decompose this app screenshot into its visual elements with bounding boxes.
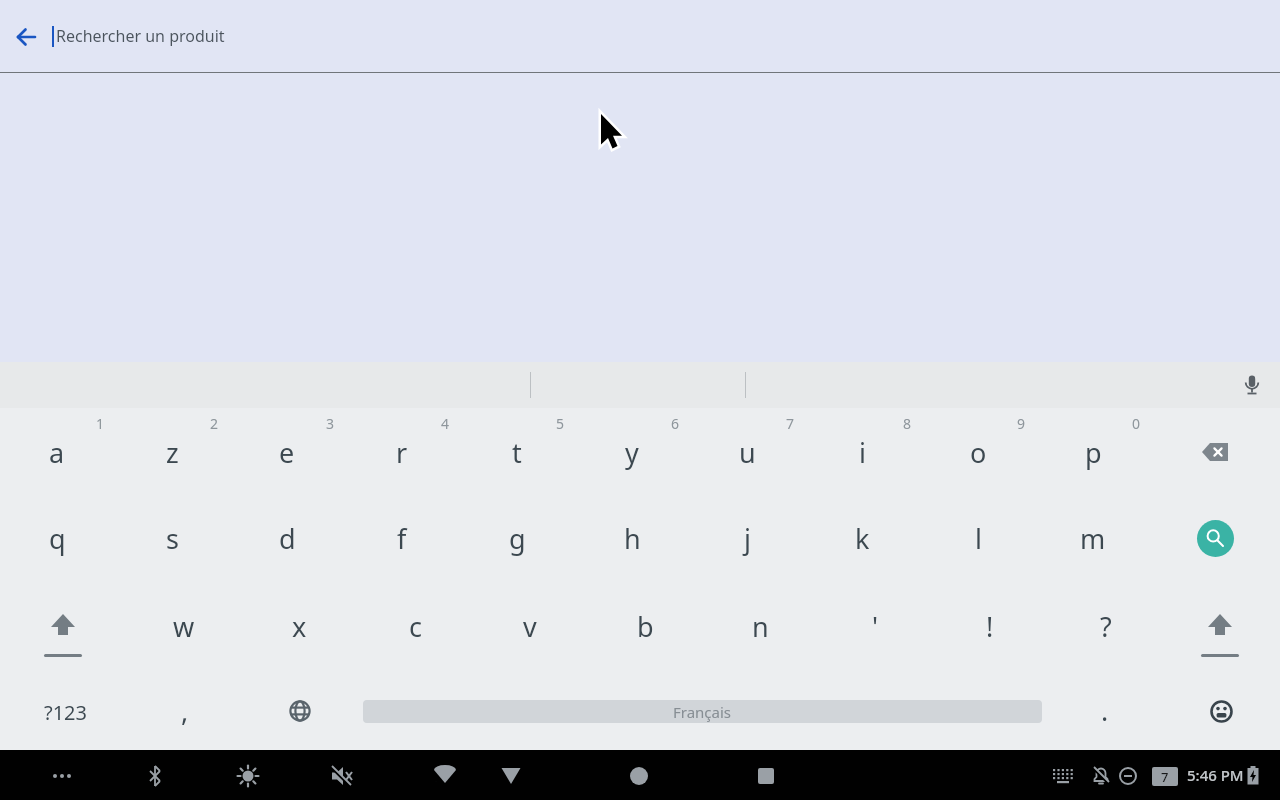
staticText: n <box>752 608 769 645</box>
button[interactable] <box>1168 593 1272 677</box>
staticText: h <box>624 520 641 557</box>
staticText: ?123 <box>44 699 87 726</box>
staticText: j <box>744 520 751 557</box>
button[interactable]: h <box>580 496 684 580</box>
button[interactable]: l <box>926 496 1030 580</box>
staticText: w <box>173 608 195 645</box>
staticText: 1 <box>96 414 105 433</box>
button[interactable]: b <box>593 584 697 668</box>
staticText: x <box>292 608 307 645</box>
button[interactable]: o <box>926 410 1030 494</box>
staticText: v <box>523 608 537 645</box>
button[interactable] <box>1236 369 1268 401</box>
staticText: q <box>49 520 66 557</box>
staticText: 0 <box>1132 414 1141 433</box>
staticText: z <box>166 434 179 471</box>
staticText: c <box>409 608 422 645</box>
staticText: 7 <box>1161 768 1169 786</box>
button[interactable]: z <box>120 410 224 494</box>
staticText: m <box>1080 520 1106 557</box>
button[interactable]: ? <box>1054 584 1158 668</box>
button[interactable] <box>248 672 352 750</box>
staticText: r <box>396 434 408 471</box>
staticText: b <box>637 608 654 645</box>
staticText: p <box>1085 434 1102 471</box>
button[interactable] <box>1163 410 1267 494</box>
staticText: 5 <box>556 414 565 433</box>
staticText: g <box>509 520 526 557</box>
button[interactable] <box>8 19 44 55</box>
button[interactable]: s <box>120 496 224 580</box>
staticText: 3 <box>326 414 335 433</box>
button[interactable] <box>1163 496 1267 580</box>
button[interactable]: ' <box>823 584 927 668</box>
button[interactable]: j <box>695 496 799 580</box>
staticText: k <box>855 520 870 557</box>
staticText: 5:46 PM <box>1187 765 1244 785</box>
button[interactable]: q <box>5 496 109 580</box>
staticText: ? <box>1100 608 1112 645</box>
button[interactable]: i <box>810 410 914 494</box>
button[interactable]: ?123 <box>10 672 120 752</box>
staticText: 6 <box>671 414 680 433</box>
button[interactable] <box>11 593 115 677</box>
button[interactable]: t <box>465 410 569 494</box>
staticText: e <box>279 434 295 471</box>
button[interactable]: u <box>695 410 799 494</box>
button[interactable]: v <box>478 584 582 668</box>
button[interactable]: c <box>363 584 467 668</box>
button[interactable]: m <box>1041 496 1145 580</box>
staticText: 9 <box>1017 414 1026 433</box>
button[interactable]: Français <box>363 700 1042 723</box>
button[interactable]: n <box>708 584 812 668</box>
button[interactable]: a <box>5 410 109 494</box>
staticText: f <box>397 520 407 557</box>
staticText: l <box>975 520 982 557</box>
staticText: Français <box>673 702 732 722</box>
button[interactable]: y <box>580 410 684 494</box>
staticText: ' <box>872 608 879 645</box>
staticText: . <box>1101 692 1109 729</box>
staticText: i <box>859 434 866 471</box>
staticText: u <box>739 434 756 471</box>
staticText: y <box>625 434 639 471</box>
staticText: 8 <box>903 414 912 433</box>
button[interactable]: g <box>465 496 569 580</box>
staticText: 2 <box>210 414 219 433</box>
staticText: 4 <box>441 414 450 433</box>
staticText: a <box>49 434 65 471</box>
staticText: 7 <box>786 414 795 433</box>
staticText: d <box>279 520 296 557</box>
staticText: ! <box>986 608 994 645</box>
button[interactable]: p <box>1041 410 1145 494</box>
button[interactable] <box>1169 672 1273 750</box>
staticText: o <box>970 434 987 471</box>
staticText: s <box>166 520 179 557</box>
button[interactable]: w <box>132 584 236 668</box>
button[interactable]: d <box>235 496 339 580</box>
button[interactable]: . <box>1053 670 1157 750</box>
button[interactable]: e <box>235 410 339 494</box>
button[interactable]: ! <box>938 584 1042 668</box>
staticText: t <box>512 434 522 471</box>
staticText: , <box>181 692 189 729</box>
button[interactable]: k <box>810 496 914 580</box>
staticText: Rechercher un produit <box>56 25 225 47</box>
button[interactable]: f <box>350 496 454 580</box>
button[interactable]: , <box>133 670 237 750</box>
button[interactable]: r <box>350 410 454 494</box>
button[interactable]: x <box>247 584 351 668</box>
